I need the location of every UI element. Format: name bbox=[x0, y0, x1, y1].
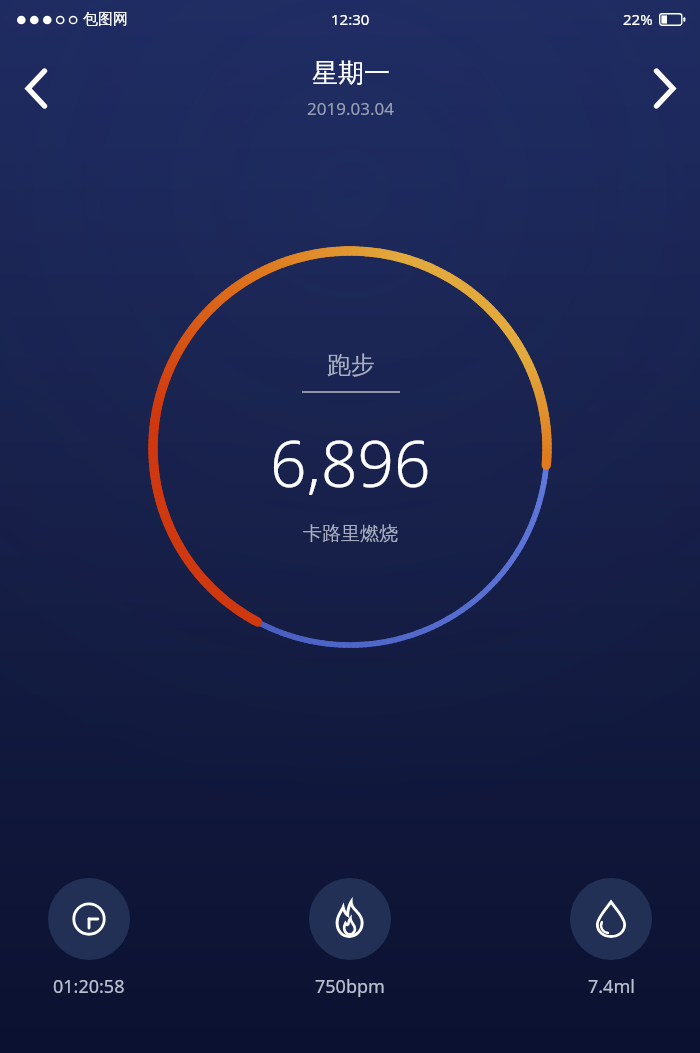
staticText: 星期一 bbox=[312, 57, 390, 90]
button[interactable]: Duration bbox=[42, 876, 136, 1001]
button[interactable]: Water intake bbox=[564, 876, 658, 1001]
button[interactable]: Calories burned bbox=[303, 876, 397, 1001]
staticText: 卡路里燃烧 bbox=[303, 522, 398, 546]
staticText: 2019.03.04 bbox=[307, 97, 394, 120]
staticText: 跑步 bbox=[327, 350, 375, 380]
staticText: 01:20:58 bbox=[53, 974, 125, 999]
button[interactable]: Previous day bbox=[6, 58, 66, 118]
staticText: 包图网 bbox=[83, 10, 128, 29]
staticText: 6,896 bbox=[270, 419, 431, 506]
staticText: 7.4ml bbox=[588, 974, 635, 999]
button[interactable]: Calories burned progress ring bbox=[146, 244, 554, 652]
staticText: 12:30 bbox=[331, 9, 370, 29]
staticText: 22% bbox=[623, 9, 653, 29]
button[interactable]: Next day bbox=[634, 58, 694, 118]
staticText: 750bpm bbox=[315, 974, 385, 999]
